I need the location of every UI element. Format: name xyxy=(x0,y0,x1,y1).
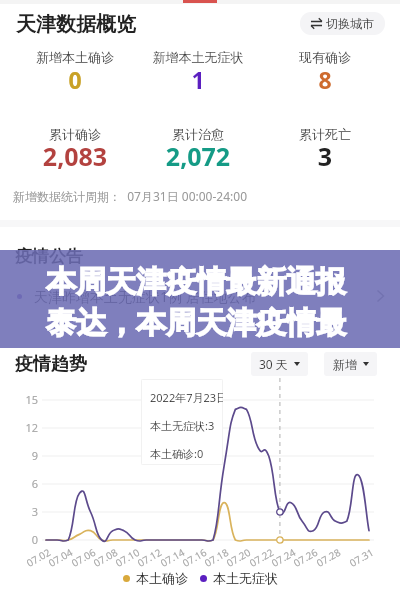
button[interactable]: 新增 xyxy=(324,352,377,376)
staticText: 疫情趋势 xyxy=(15,353,87,376)
staticText: 新增本土确诊 xyxy=(15,49,135,65)
staticText: 07.31 xyxy=(345,545,376,571)
staticText: 泰达，本周天津疫情最 xyxy=(46,304,346,342)
button[interactable]: 30 天 xyxy=(251,352,308,376)
staticText: 07.22 xyxy=(245,545,276,571)
staticText: 07.28 xyxy=(312,545,343,571)
staticText: 现有确诊 xyxy=(265,49,385,65)
staticText: 2,083 xyxy=(15,139,135,173)
staticText: 天津昨增本土无症状1例 居住地公布 xyxy=(34,287,377,306)
staticText: 07.14 xyxy=(156,545,187,571)
staticText: 3 xyxy=(22,504,38,519)
staticText: 3 xyxy=(265,139,385,173)
staticText: 累计治愈 xyxy=(138,126,258,142)
staticText: 本土无症状:3 xyxy=(150,418,215,433)
staticText: 07.12 xyxy=(133,545,164,571)
staticText: 本土无症状 xyxy=(213,570,278,586)
staticText: 1 xyxy=(138,64,258,95)
staticText: 6 xyxy=(22,476,38,491)
staticText: 07.16 xyxy=(178,545,209,571)
staticText: 15 xyxy=(22,392,38,407)
staticText: 新增数据统计周期： 07月31日 00:00-24:00 xyxy=(13,188,248,204)
staticText: 累计死亡 xyxy=(265,126,385,142)
staticText: 0 xyxy=(15,64,135,95)
button[interactable]: 切换城市 xyxy=(300,12,385,35)
staticText: 07.18 xyxy=(200,545,231,571)
button[interactable]: 天津昨增本土无症状1例 居住地公布 xyxy=(0,284,400,308)
staticText: 30 天 xyxy=(259,356,288,372)
staticText: 累计确诊 xyxy=(15,126,135,142)
staticText: 07.20 xyxy=(222,545,253,571)
staticText: 本周天津疫情最新通报 xyxy=(46,263,346,301)
staticText: 07.10 xyxy=(111,545,142,571)
staticText: 疫情公告 xyxy=(15,246,83,267)
staticText: 07.06 xyxy=(67,545,98,571)
staticText: 07.26 xyxy=(289,545,320,571)
staticText: 本土确诊:0 xyxy=(150,446,204,461)
staticText: 新增本土无症状 xyxy=(138,49,258,65)
staticText: 07.08 xyxy=(89,545,120,571)
staticText: 天津数据概览 xyxy=(16,12,136,37)
staticText: 07.02 xyxy=(22,545,53,571)
staticText: 2022年7月23日 xyxy=(150,390,223,405)
staticText: 切换城市 xyxy=(326,16,374,31)
staticText: 07.04 xyxy=(44,545,75,571)
staticText: 9 xyxy=(22,448,38,463)
staticText: 0 xyxy=(22,532,38,547)
staticText: 本土确诊 xyxy=(136,570,188,586)
staticText: 新增 xyxy=(333,357,357,372)
staticText: 2,072 xyxy=(138,139,258,173)
staticText: 12 xyxy=(22,420,38,435)
staticText: 07.24 xyxy=(267,545,298,571)
staticText: 8 xyxy=(265,64,385,95)
